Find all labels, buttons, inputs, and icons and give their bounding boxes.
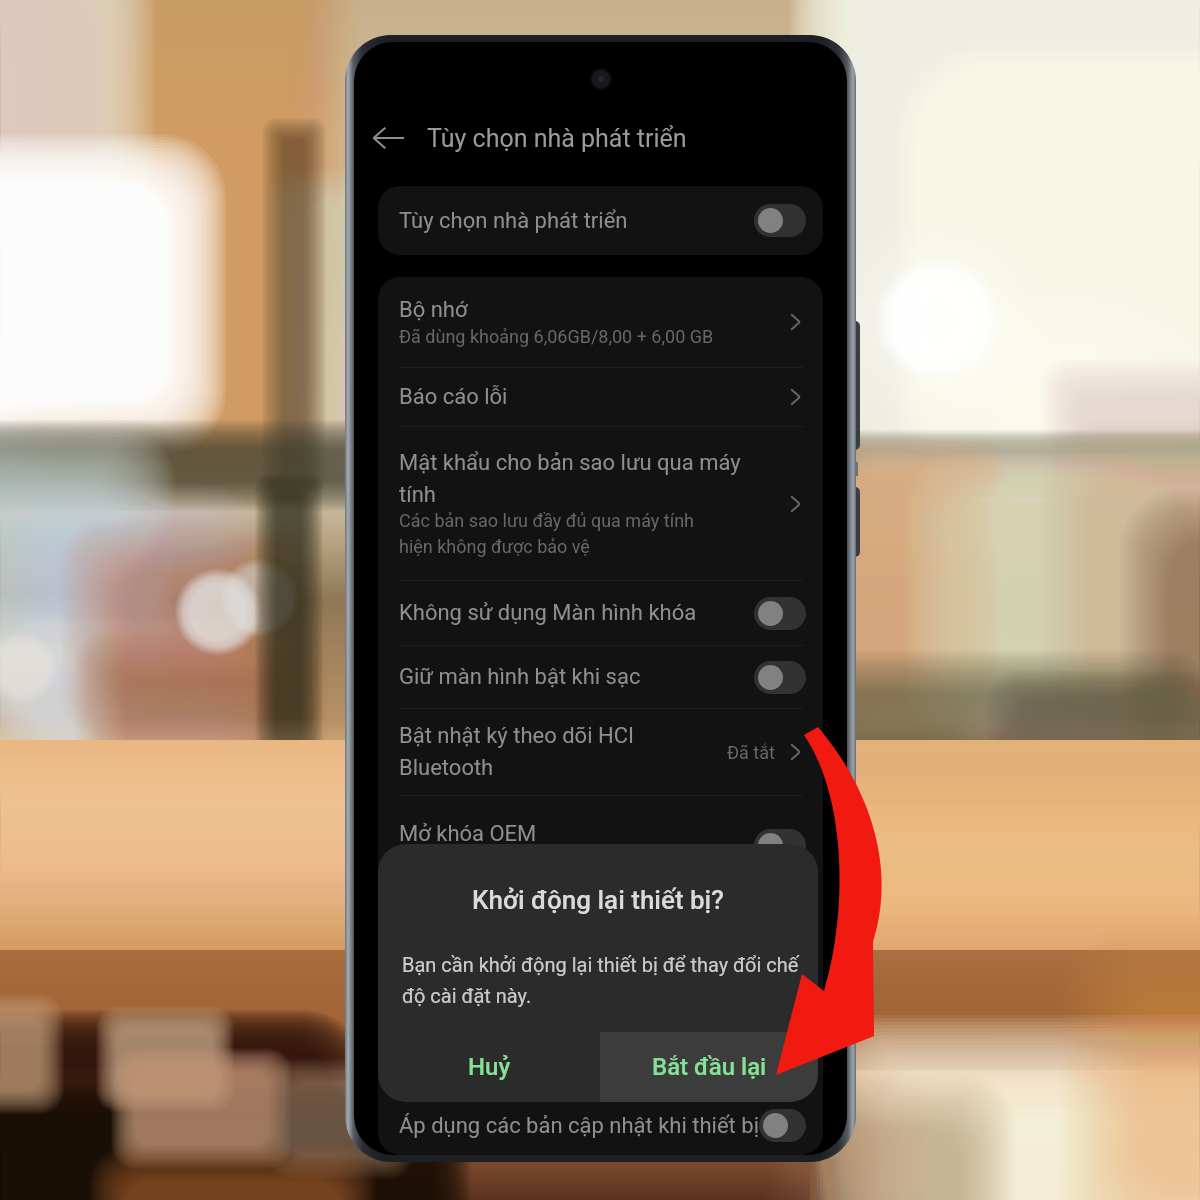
staticText: Bắt đầu lại xyxy=(652,1053,767,1081)
staticText: Mở khóa OEM xyxy=(399,821,537,847)
button[interactable]: Báo cáo lỗi xyxy=(378,368,823,426)
staticText: Khởi động lại thiết bị? xyxy=(378,885,818,915)
button[interactable]: Bắt đầu lại xyxy=(600,1032,818,1102)
button[interactable]: Gỡ lỗi qua USB xyxy=(378,996,823,1095)
button[interactable]: Toggle xyxy=(759,1109,806,1142)
button[interactable]: Mật khẩu cho bản sao lưu qua máy tính xyxy=(378,427,823,580)
staticText: Đã dùng khoảng 6,06GB/8,00 + 6,00 GB xyxy=(399,326,771,347)
button[interactable]: Bật nhật ký theo dõi HCI Bluetooth xyxy=(378,709,823,795)
button[interactable]: Toggle xyxy=(754,1029,806,1062)
staticText: Tùy chọn nhà phát triển xyxy=(399,208,628,234)
staticText: Áp dụng các bản cập nhật khi thiết bị xyxy=(399,1113,759,1139)
button[interactable]: Toggle xyxy=(754,204,806,237)
staticText: Không sử dụng Màn hình khóa xyxy=(399,600,697,626)
button[interactable]: Toggle xyxy=(754,929,806,962)
staticText: Chế độ gỡ lỗi khi đã kết nối USB xyxy=(399,1050,653,1071)
staticText: Các bản sao lưu đầy đủ qua máy tính hiện… xyxy=(399,510,723,558)
staticText: Xem và kiểm soát các dịch vụ đang chạy xyxy=(399,950,723,971)
button[interactable]: Không sử dụng Màn hình khóa xyxy=(378,581,823,645)
staticText: Bạn cần khởi động lại thiết bị để thay đ… xyxy=(402,953,808,1007)
button[interactable]: Tùy chọn nhà phát triển xyxy=(378,186,823,255)
staticText: Huỷ xyxy=(468,1053,511,1081)
button[interactable]: Áp dụng các bản cập nhật khi thiết bị xyxy=(378,1096,823,1155)
staticText: Bật nhật ký theo dõi HCI Bluetooth xyxy=(399,723,717,781)
button[interactable]: Giữ màn hình bật khi sạc xyxy=(378,646,823,708)
button[interactable]: Bộ nhớ xyxy=(378,277,823,367)
button[interactable]: Toggle xyxy=(754,661,806,694)
button[interactable]: Toggle xyxy=(754,597,806,630)
staticText: Tùy chọn nhà phát triển xyxy=(427,124,687,153)
staticText: Bộ nhớ xyxy=(399,297,468,323)
staticText: Giữ màn hình bật khi sạc xyxy=(399,664,641,690)
button[interactable]: Toggle xyxy=(754,829,806,862)
button[interactable]: Chạy dịch vụ xyxy=(378,896,823,995)
staticText: Mật khẩu cho bản sao lưu qua máy tính xyxy=(399,450,771,507)
button[interactable]: Mở khóa OEM xyxy=(378,796,823,895)
staticText: Báo cáo lỗi xyxy=(399,384,508,410)
staticText: Đã tắt xyxy=(727,742,775,763)
button[interactable]: Huỷ xyxy=(378,1032,600,1102)
button[interactable]: Back xyxy=(364,114,412,162)
